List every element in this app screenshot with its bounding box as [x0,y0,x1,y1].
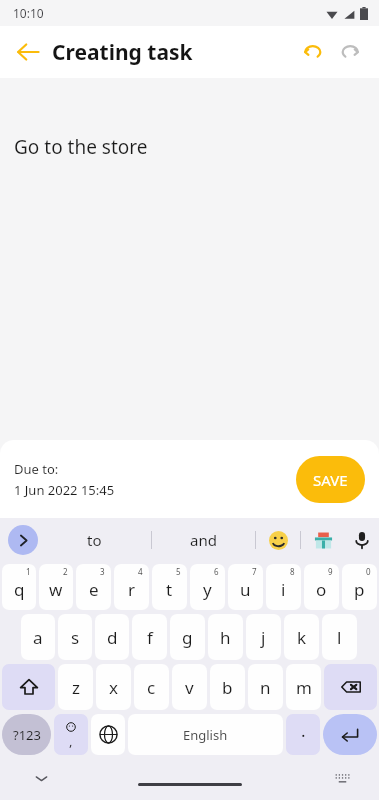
staticText: j [261,626,266,649]
staticText: u [240,578,251,601]
button[interactable]: SAVE [296,456,365,503]
staticText: to [87,530,102,550]
button[interactable]: Emoji [256,518,300,562]
staticText: 1 [26,566,31,577]
button[interactable]: Enter [323,714,377,755]
button[interactable]: h [208,614,243,660]
staticText: . [301,719,306,742]
button[interactable]: and [152,518,255,562]
staticText: Creating task [52,38,193,67]
staticText: 1 Jun 2022 15:45 [14,481,115,499]
staticText: 4 [138,566,143,577]
staticText: 6 [214,566,219,577]
button[interactable]: c [134,664,169,710]
staticText: m [296,676,312,699]
button[interactable]: e [76,564,111,610]
button[interactable]: Redo [331,33,369,71]
staticText: y [203,578,212,601]
button[interactable]: Hide keyboard [26,763,56,793]
staticText: 2 [63,566,68,577]
staticText: c [147,676,156,699]
button[interactable]: u [228,564,263,610]
button[interactable]: d [95,614,129,660]
staticText: g [182,626,193,649]
staticText: Go to the store [14,134,148,160]
staticText: English [183,726,228,744]
button[interactable]: j [246,614,281,660]
button[interactable]: a [21,614,55,660]
staticText: a [33,626,43,649]
staticText: f [147,626,153,649]
button[interactable]: i [266,564,301,610]
staticText: l [337,626,342,649]
button[interactable]: Change language [91,714,125,755]
button[interactable]: Sticker [301,518,345,562]
button[interactable]: z [58,664,93,710]
staticText: s [71,626,80,649]
button[interactable]: p [342,564,377,610]
staticText: 7 [252,566,257,577]
button[interactable]: x [96,664,131,710]
button[interactable]: Backspace [324,664,377,710]
button[interactable]: . [286,714,320,755]
button[interactable]: Shift [2,664,55,710]
button[interactable]: o [304,564,339,610]
staticText: ?123 [13,726,41,744]
staticText: h [220,626,231,649]
button[interactable]: f [132,614,167,660]
staticText: SAVE [313,470,348,490]
staticText: w [49,578,63,601]
staticText: r [128,578,136,601]
button[interactable]: More suggestions [8,525,38,555]
staticText: 3 [100,566,105,577]
staticText: i [281,578,286,601]
button[interactable]: s [58,614,92,660]
button[interactable]: Undo [293,33,331,71]
button[interactable]: Emoji and comma [54,714,88,755]
staticText: b [222,676,233,699]
button[interactable]: to [38,518,151,562]
button[interactable]: w [39,564,73,610]
button[interactable]: Switch keyboard [327,763,357,793]
button[interactable]: y [190,564,225,610]
button[interactable]: g [170,614,205,660]
staticText: d [107,626,118,649]
button[interactable]: n [248,664,283,710]
staticText: t [166,578,173,601]
button[interactable]: Voice input [345,518,379,562]
button[interactable]: Back [10,34,46,70]
staticText: 10:10 [13,5,44,21]
staticText: q [14,578,25,601]
staticText: 5 [176,566,181,577]
button[interactable]: k [284,614,319,660]
staticText: x [109,676,118,699]
staticText: k [297,626,307,649]
staticText: e [89,578,99,601]
staticText: 8 [290,566,295,577]
button[interactable]: English [128,714,283,755]
staticText: z [72,676,80,699]
button[interactable]: ?123 [2,714,51,755]
staticText: o [316,578,327,601]
staticText: and [190,530,217,550]
staticText: p [354,578,365,601]
button[interactable]: m [286,664,321,710]
staticText: 9 [328,566,333,577]
staticText: Due to: [14,460,59,478]
button[interactable]: r [114,564,149,610]
staticText: , [69,732,73,750]
button[interactable]: b [210,664,245,710]
button[interactable]: q [2,564,36,610]
staticText: v [185,676,194,699]
staticText: 0 [366,566,371,577]
button[interactable]: v [172,664,207,710]
button[interactable]: l [322,614,357,660]
button[interactable]: t [152,564,187,610]
staticText: n [260,676,271,699]
